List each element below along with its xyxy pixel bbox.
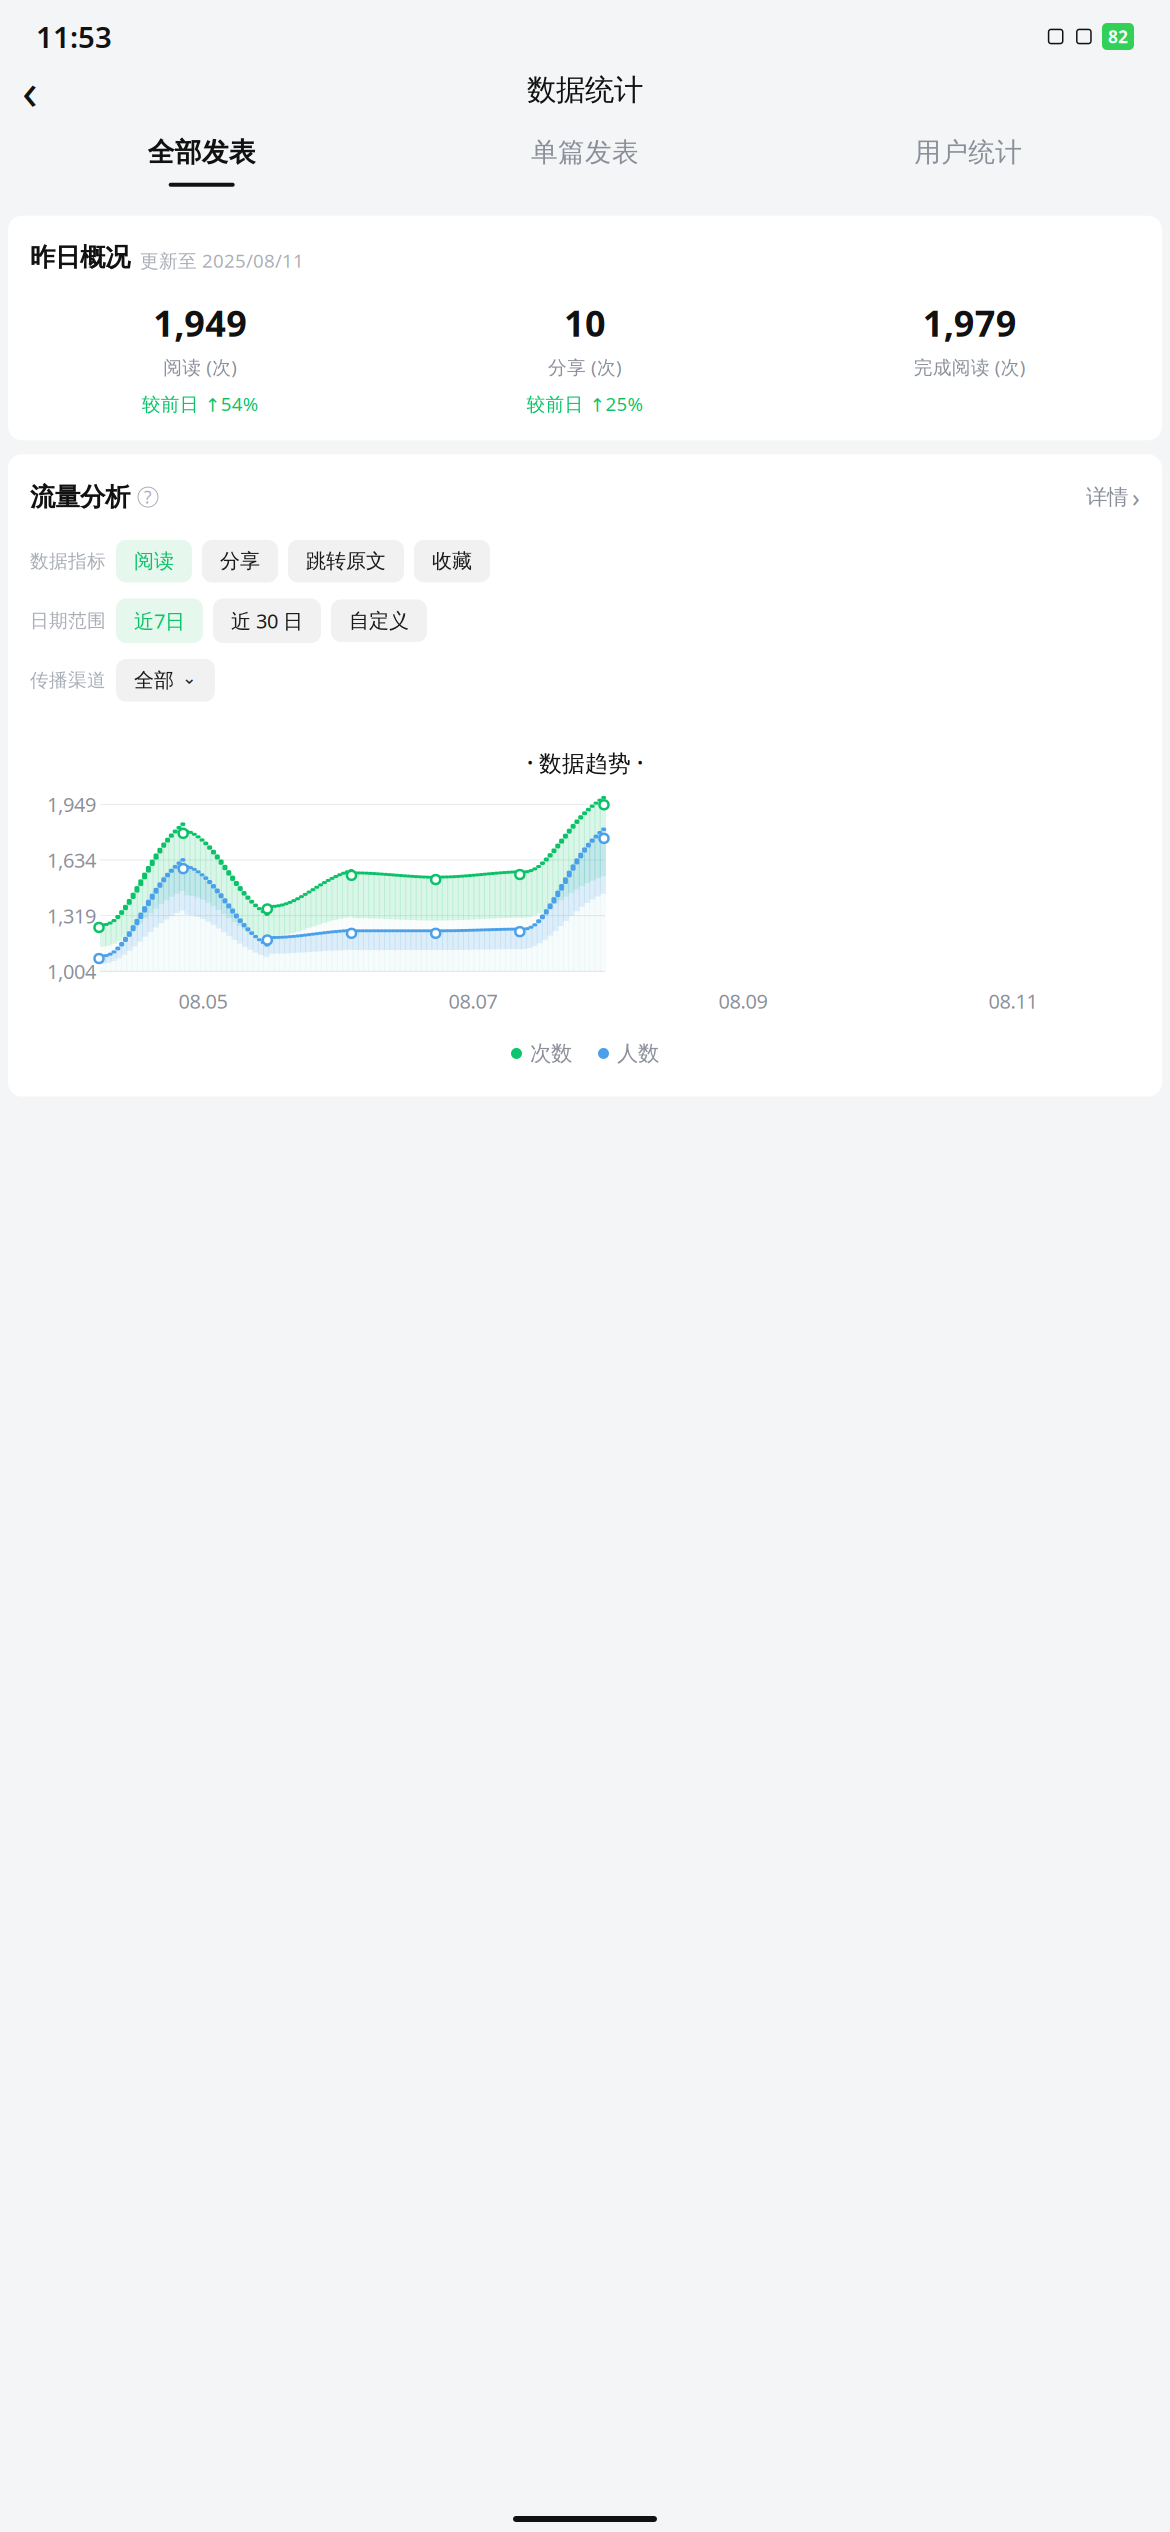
button[interactable]: 全部发表 [10, 132, 393, 191]
staticText: 完成阅读 (次) [914, 355, 1026, 379]
button[interactable]: 单篇发表 [393, 132, 777, 191]
staticText: 昨日概况 [30, 242, 130, 273]
button[interactable]: 自定义 [331, 599, 427, 642]
staticText: 人数 [617, 1040, 659, 1067]
staticText: 1,979 [923, 299, 1017, 347]
staticText: 数据指标 [30, 550, 106, 573]
staticText: 全部 [134, 668, 174, 693]
staticText: 阅读 (次) [163, 355, 237, 379]
staticText: 更新至 2025/08/11 [140, 248, 304, 273]
staticText: 全部发表 [148, 136, 256, 169]
staticText: 08.11 [988, 988, 1037, 1014]
staticText: 10 [564, 299, 606, 347]
staticText: 较前日 ↑25% [526, 391, 643, 416]
staticText: 阅读 [134, 549, 174, 573]
staticText: · 数据趋势 · [527, 748, 643, 778]
staticText: 详情 [1086, 484, 1128, 510]
staticText: ? [144, 486, 152, 509]
button[interactable]: 近7日 [116, 598, 203, 643]
staticText: 分享 (次) [548, 355, 622, 379]
button[interactable]: 详情 [1086, 480, 1140, 514]
staticText: 08.05 [178, 988, 227, 1014]
staticText: 1,004 [47, 958, 96, 985]
button[interactable]: 阅读 [116, 540, 192, 582]
button[interactable]: 用户统计 [777, 132, 1160, 191]
staticText: › [1132, 480, 1140, 514]
button[interactable]: 返回 [22, 66, 70, 114]
staticText: 82 [1108, 25, 1128, 48]
staticText: 次数 [530, 1040, 572, 1067]
staticText: 近 30 日 [231, 607, 303, 634]
staticText: 流量分析 [30, 481, 130, 513]
staticText: 用户统计 [914, 136, 1022, 169]
staticText: 11:53 [36, 17, 112, 56]
staticText: 传播渠道 [30, 669, 106, 692]
staticText: 1,949 [153, 299, 247, 347]
button[interactable]: 近 30 日 [213, 598, 321, 643]
staticText: 较前日 ↑54% [142, 391, 259, 416]
staticText: 自定义 [349, 608, 409, 633]
button[interactable]: 分享 [202, 540, 278, 582]
staticText: 1,634 [47, 847, 96, 873]
button[interactable]: 收藏 [414, 540, 490, 582]
staticText: ‹ [22, 56, 38, 124]
staticText: 分享 [220, 549, 260, 573]
button[interactable]: 全部 [116, 659, 215, 702]
button[interactable]: 跳转原文 [288, 540, 404, 582]
staticText: 收藏 [432, 549, 472, 573]
staticText: 1,949 [47, 791, 96, 818]
staticText: 08.09 [718, 988, 767, 1014]
staticText: 跳转原文 [306, 549, 386, 573]
staticText: 单篇发表 [531, 136, 639, 169]
staticText: 数据统计 [527, 72, 643, 108]
staticText: 日期范围 [30, 609, 106, 632]
staticText: ⌄ [182, 668, 197, 688]
staticText: 近7日 [134, 607, 185, 634]
staticText: 08.07 [448, 988, 497, 1014]
staticText: 1,319 [47, 902, 96, 929]
